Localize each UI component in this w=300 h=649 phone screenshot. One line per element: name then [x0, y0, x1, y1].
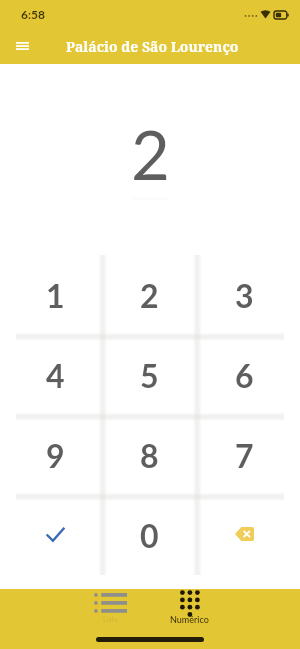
staticText: 6 — [235, 356, 254, 394]
button[interactable]: Confirm — [8, 495, 102, 575]
button[interactable]: Lista — [71, 590, 150, 626]
other: Confirm — [42, 521, 68, 547]
button[interactable]: 9 — [8, 415, 102, 495]
staticText: 9 — [46, 436, 65, 474]
staticText: 7 — [235, 436, 254, 474]
button[interactable]: 8 — [102, 415, 197, 495]
staticText: 8 — [140, 436, 159, 474]
button[interactable]: 0 — [102, 495, 197, 575]
staticText: 6:58 — [21, 7, 45, 21]
staticText: 2 — [131, 114, 170, 194]
button[interactable]: 5 — [102, 335, 197, 415]
staticText: Lista — [103, 615, 118, 623]
staticText: Numérico — [170, 614, 209, 625]
staticText: 1 — [46, 276, 65, 314]
staticText: 4 — [46, 356, 65, 394]
button[interactable]: 6 — [197, 335, 292, 415]
button[interactable]: 1 — [8, 255, 102, 335]
button[interactable]: 2 — [102, 255, 197, 335]
button[interactable]: Backspace — [197, 495, 292, 575]
staticText: 5 — [140, 356, 159, 394]
staticText: 2 — [140, 276, 159, 314]
button[interactable]: Menu — [7, 31, 37, 61]
staticText: 0 — [140, 516, 159, 554]
staticText: 3 — [235, 276, 254, 314]
button[interactable]: 4 — [8, 335, 102, 415]
staticText: Palácio de São Lourenço — [66, 37, 239, 56]
button[interactable]: Numérico — [150, 590, 229, 626]
button[interactable]: 3 — [197, 255, 292, 335]
button[interactable]: 7 — [197, 415, 292, 495]
other: Backspace — [235, 527, 254, 541]
